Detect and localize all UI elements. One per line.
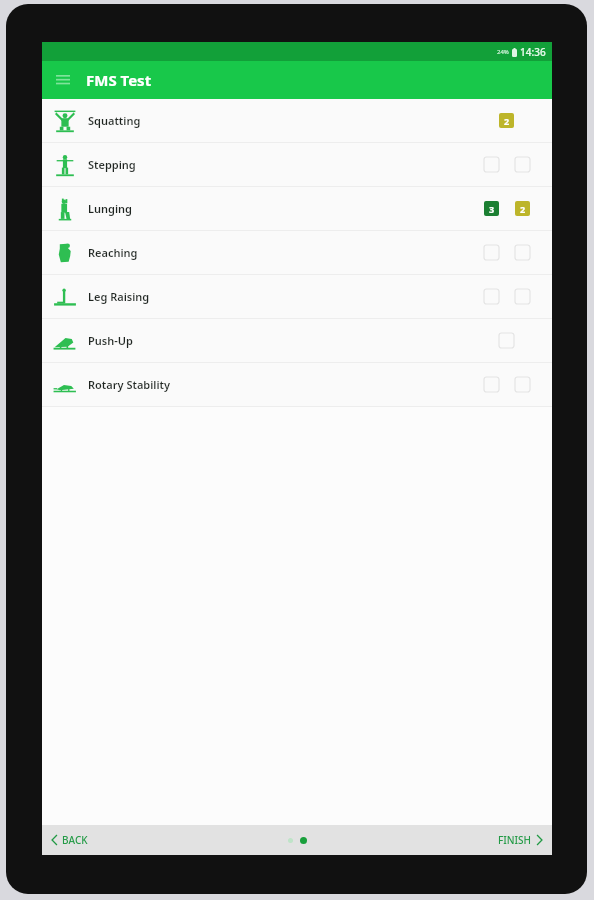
staticText: 2 <box>504 115 510 127</box>
button[interactable]: 3 <box>484 201 499 216</box>
button[interactable]: Rotary Stability <box>42 363 552 407</box>
button[interactable]: Score option <box>515 377 530 392</box>
button[interactable]: Score option <box>484 289 499 304</box>
staticText: BACK <box>62 833 88 847</box>
button[interactable]: Leg Raising <box>42 275 552 319</box>
button[interactable]: Push-Up <box>42 319 552 363</box>
button[interactable]: Score option <box>515 289 530 304</box>
staticText: Leg Raising <box>88 289 150 304</box>
button[interactable]: Squatting <box>42 99 552 143</box>
button[interactable]: Stepping <box>42 143 552 187</box>
button[interactable]: BACK <box>51 833 88 847</box>
staticText: Stepping <box>88 157 136 172</box>
button[interactable]: Lunging <box>42 187 552 231</box>
button[interactable]: Reaching <box>42 231 552 275</box>
staticText: FMS Test <box>86 70 152 90</box>
staticText: 24% <box>497 48 509 56</box>
button[interactable]: Score option <box>515 245 530 260</box>
staticText: 14:36 <box>520 45 546 59</box>
button[interactable]: Score option <box>484 157 499 172</box>
staticText: Reaching <box>88 245 138 260</box>
button[interactable]: FINISH <box>498 833 543 847</box>
staticText: 2 <box>520 203 526 215</box>
staticText: 3 <box>489 203 495 215</box>
staticText: Rotary Stability <box>88 377 171 392</box>
button[interactable]: Open navigation menu <box>50 67 76 93</box>
button[interactable]: 2 <box>515 201 530 216</box>
button[interactable]: Score option <box>484 245 499 260</box>
button[interactable]: Score option <box>484 377 499 392</box>
staticText: Lunging <box>88 201 132 216</box>
staticText: Push-Up <box>88 333 133 348</box>
button[interactable]: Score option <box>515 157 530 172</box>
staticText: FINISH <box>498 833 532 847</box>
staticText: Squatting <box>88 113 141 128</box>
button[interactable]: Score option <box>499 333 514 348</box>
button[interactable]: 2 <box>499 113 514 128</box>
